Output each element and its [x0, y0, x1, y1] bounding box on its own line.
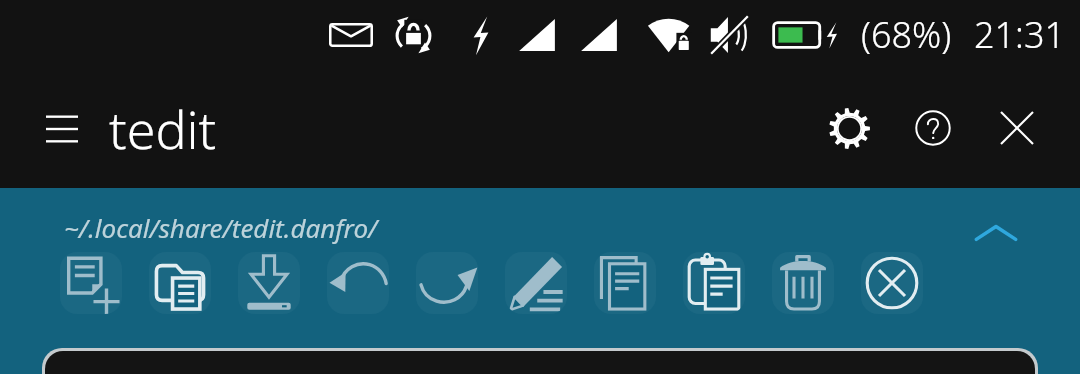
- button[interactable]: Close file: [861, 252, 923, 314]
- button[interactable]: Menu: [28, 95, 96, 163]
- button[interactable]: Help: [891, 86, 975, 170]
- button[interactable]: New file: [60, 252, 122, 314]
- button[interactable]: Collapse toolbar: [962, 204, 1030, 272]
- button[interactable]: Edit: [505, 252, 567, 314]
- staticText: (68%): [861, 10, 952, 59]
- button[interactable]: Save file: [238, 252, 300, 314]
- staticText: ~/.local/share/tedit.danfro/: [64, 210, 378, 245]
- button[interactable]: Open file: [149, 252, 211, 314]
- staticText: tedit: [109, 93, 217, 164]
- button[interactable]: Close: [975, 86, 1059, 170]
- button[interactable]: Copy: [594, 252, 656, 314]
- button[interactable]: Delete: [772, 252, 834, 314]
- button[interactable]: Settings: [807, 86, 891, 170]
- button[interactable]: Redo: [416, 252, 478, 314]
- staticText: 21:31: [974, 10, 1066, 59]
- button[interactable]: Paste: [683, 252, 745, 314]
- button[interactable]: Undo: [327, 252, 389, 314]
